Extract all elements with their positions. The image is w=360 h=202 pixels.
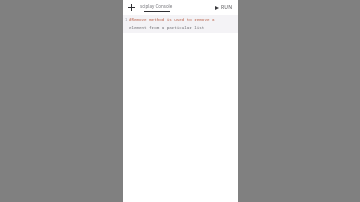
staticText: #Remove method is used to remove a bbox=[129, 17, 215, 23]
button[interactable]: RUN bbox=[213, 3, 235, 12]
staticText: element from a particular list bbox=[129, 25, 205, 31]
staticText: sciplay Console bbox=[140, 3, 173, 9]
staticText: RUN bbox=[221, 4, 233, 11]
button[interactable]: sciplay Console bbox=[139, 3, 174, 12]
button[interactable]: New file bbox=[126, 2, 137, 13]
staticText: 1 bbox=[125, 17, 128, 22]
